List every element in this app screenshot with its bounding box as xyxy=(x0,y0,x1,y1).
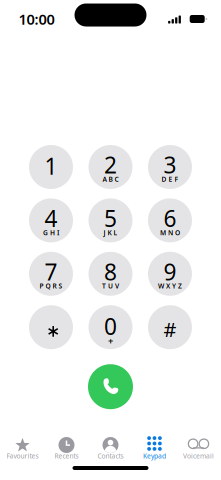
button[interactable]: 4 xyxy=(29,198,73,242)
staticText: W X Y Z xyxy=(158,282,182,290)
staticText: G H I xyxy=(43,228,59,237)
button[interactable]: 5 xyxy=(88,198,132,242)
button[interactable] xyxy=(29,305,73,349)
staticText: Keypad xyxy=(143,451,166,460)
button[interactable]: Call xyxy=(88,364,133,409)
button[interactable]: 9 xyxy=(148,252,192,296)
button[interactable]: Favourites xyxy=(0,437,44,463)
button[interactable]: 7 xyxy=(29,252,73,296)
button[interactable]: 3 xyxy=(148,145,192,189)
staticText: Recents xyxy=(54,451,78,460)
staticText: 0 xyxy=(104,311,117,341)
staticText: # xyxy=(163,316,176,342)
staticText: 1 xyxy=(44,151,57,181)
staticText: 5 xyxy=(104,203,117,233)
staticText: D E F xyxy=(161,175,178,184)
staticText: M N O xyxy=(160,228,180,237)
staticText: 7 xyxy=(44,256,57,287)
staticText: Favourites xyxy=(6,451,38,460)
button[interactable]: # xyxy=(148,305,192,349)
staticText: Voicemail xyxy=(183,451,214,460)
staticText: 2 xyxy=(104,150,117,180)
button[interactable]: 6 xyxy=(148,198,192,242)
button[interactable]: Voicemail xyxy=(176,437,220,463)
staticText: P Q R S xyxy=(39,282,62,290)
staticText: 4 xyxy=(44,203,57,233)
staticText: + xyxy=(108,335,113,347)
button[interactable]: 2 xyxy=(88,145,132,189)
staticText: 9 xyxy=(163,256,176,287)
button[interactable]: Recents xyxy=(44,437,88,463)
button[interactable]: 1 xyxy=(29,145,73,189)
staticText: 10:00 xyxy=(18,9,54,29)
staticText: T U V xyxy=(102,282,119,290)
staticText: 3 xyxy=(163,150,176,180)
button[interactable]: 8 xyxy=(88,252,132,296)
button[interactable]: 0 xyxy=(88,305,132,349)
staticText: J K L xyxy=(103,228,117,237)
button[interactable]: Contacts xyxy=(88,437,132,463)
staticText: Contacts xyxy=(97,451,123,460)
staticText: A B C xyxy=(102,175,118,184)
staticText: 6 xyxy=(163,203,176,233)
button[interactable]: Keypad xyxy=(132,437,176,463)
staticText: 8 xyxy=(104,256,117,287)
